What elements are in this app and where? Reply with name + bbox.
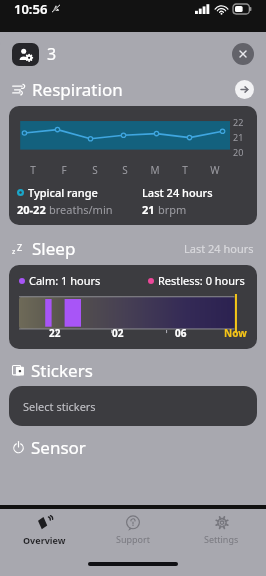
staticText: T <box>30 163 36 177</box>
button[interactable]: Support <box>88 509 177 551</box>
staticText: 3 <box>47 43 57 65</box>
button[interactable]: Overview <box>0 509 88 551</box>
staticText: Stickers <box>31 359 93 382</box>
staticText: Z <box>17 241 23 253</box>
staticText: Now <box>224 326 247 340</box>
staticText: 20 <box>233 146 244 158</box>
staticText: Sensor <box>31 436 86 459</box>
button[interactable] <box>12 43 39 66</box>
staticText: Overview <box>23 534 66 546</box>
button[interactable]: Open Respiration details <box>235 80 254 99</box>
staticText: W <box>210 163 220 177</box>
staticText: F <box>61 163 67 177</box>
staticText: 22 <box>233 116 244 128</box>
staticText: Last 24 hours <box>184 241 254 256</box>
staticText: 20-22 <box>17 202 49 217</box>
button[interactable]: Close <box>232 43 254 65</box>
staticText: Respiration <box>32 78 123 101</box>
staticText: S <box>122 163 128 177</box>
button[interactable]: Calm: 1 hours <box>9 265 257 349</box>
staticText: Select stickers <box>23 399 96 414</box>
staticText: 21 <box>233 131 244 143</box>
staticText: breaths/min <box>49 202 113 217</box>
staticText: 06 <box>175 326 187 340</box>
button[interactable]: Select stickers <box>9 386 257 426</box>
staticText: Restless: 0 hours <box>158 273 245 288</box>
button[interactable]: 22 <box>9 106 257 225</box>
staticText: T <box>182 163 188 177</box>
button[interactable]: Settings <box>177 509 266 551</box>
staticText: Support <box>116 533 150 545</box>
staticText: Typical range <box>28 185 98 200</box>
staticText: Calm: 1 hours <box>29 273 101 288</box>
staticText: Last 24 hours <box>142 185 213 200</box>
staticText: M <box>150 163 160 177</box>
staticText: 02 <box>112 326 124 340</box>
staticText: brpm <box>158 202 187 217</box>
staticText: 21 <box>142 202 158 217</box>
staticText: Sleep <box>32 237 76 260</box>
staticText: 10:56 <box>14 0 48 18</box>
staticText: Settings <box>204 533 239 545</box>
staticText: S <box>92 163 98 177</box>
staticText: z <box>12 247 16 257</box>
staticText: 22 <box>49 326 61 340</box>
